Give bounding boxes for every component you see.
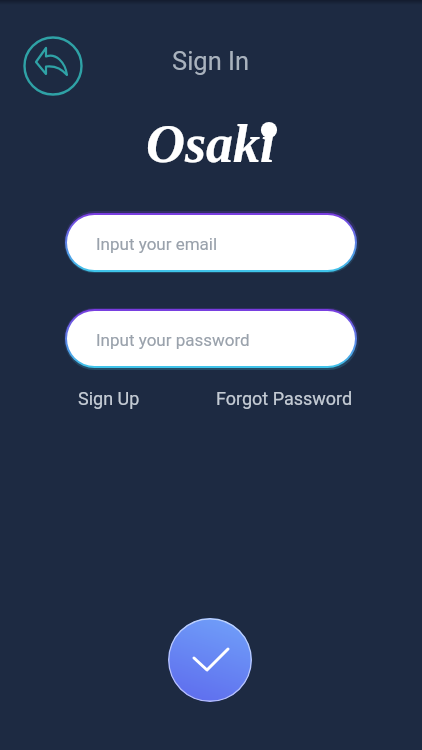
- staticText: Sign Up: [78, 388, 140, 409]
- button[interactable]: [168, 618, 252, 702]
- staticText: Forgot Password: [216, 388, 353, 409]
- button[interactable]: Sign Up: [78, 388, 140, 409]
- staticText: Osakı: [146, 114, 276, 174]
- button[interactable]: Input your password: [65, 309, 357, 368]
- staticText: Input your email: [96, 234, 218, 254]
- staticText: Sign In: [172, 46, 250, 76]
- button[interactable]: [23, 36, 83, 96]
- button[interactable]: Forgot Password: [216, 388, 353, 409]
- button[interactable]: Input your email: [65, 213, 357, 272]
- staticText: Input your password: [96, 330, 250, 350]
